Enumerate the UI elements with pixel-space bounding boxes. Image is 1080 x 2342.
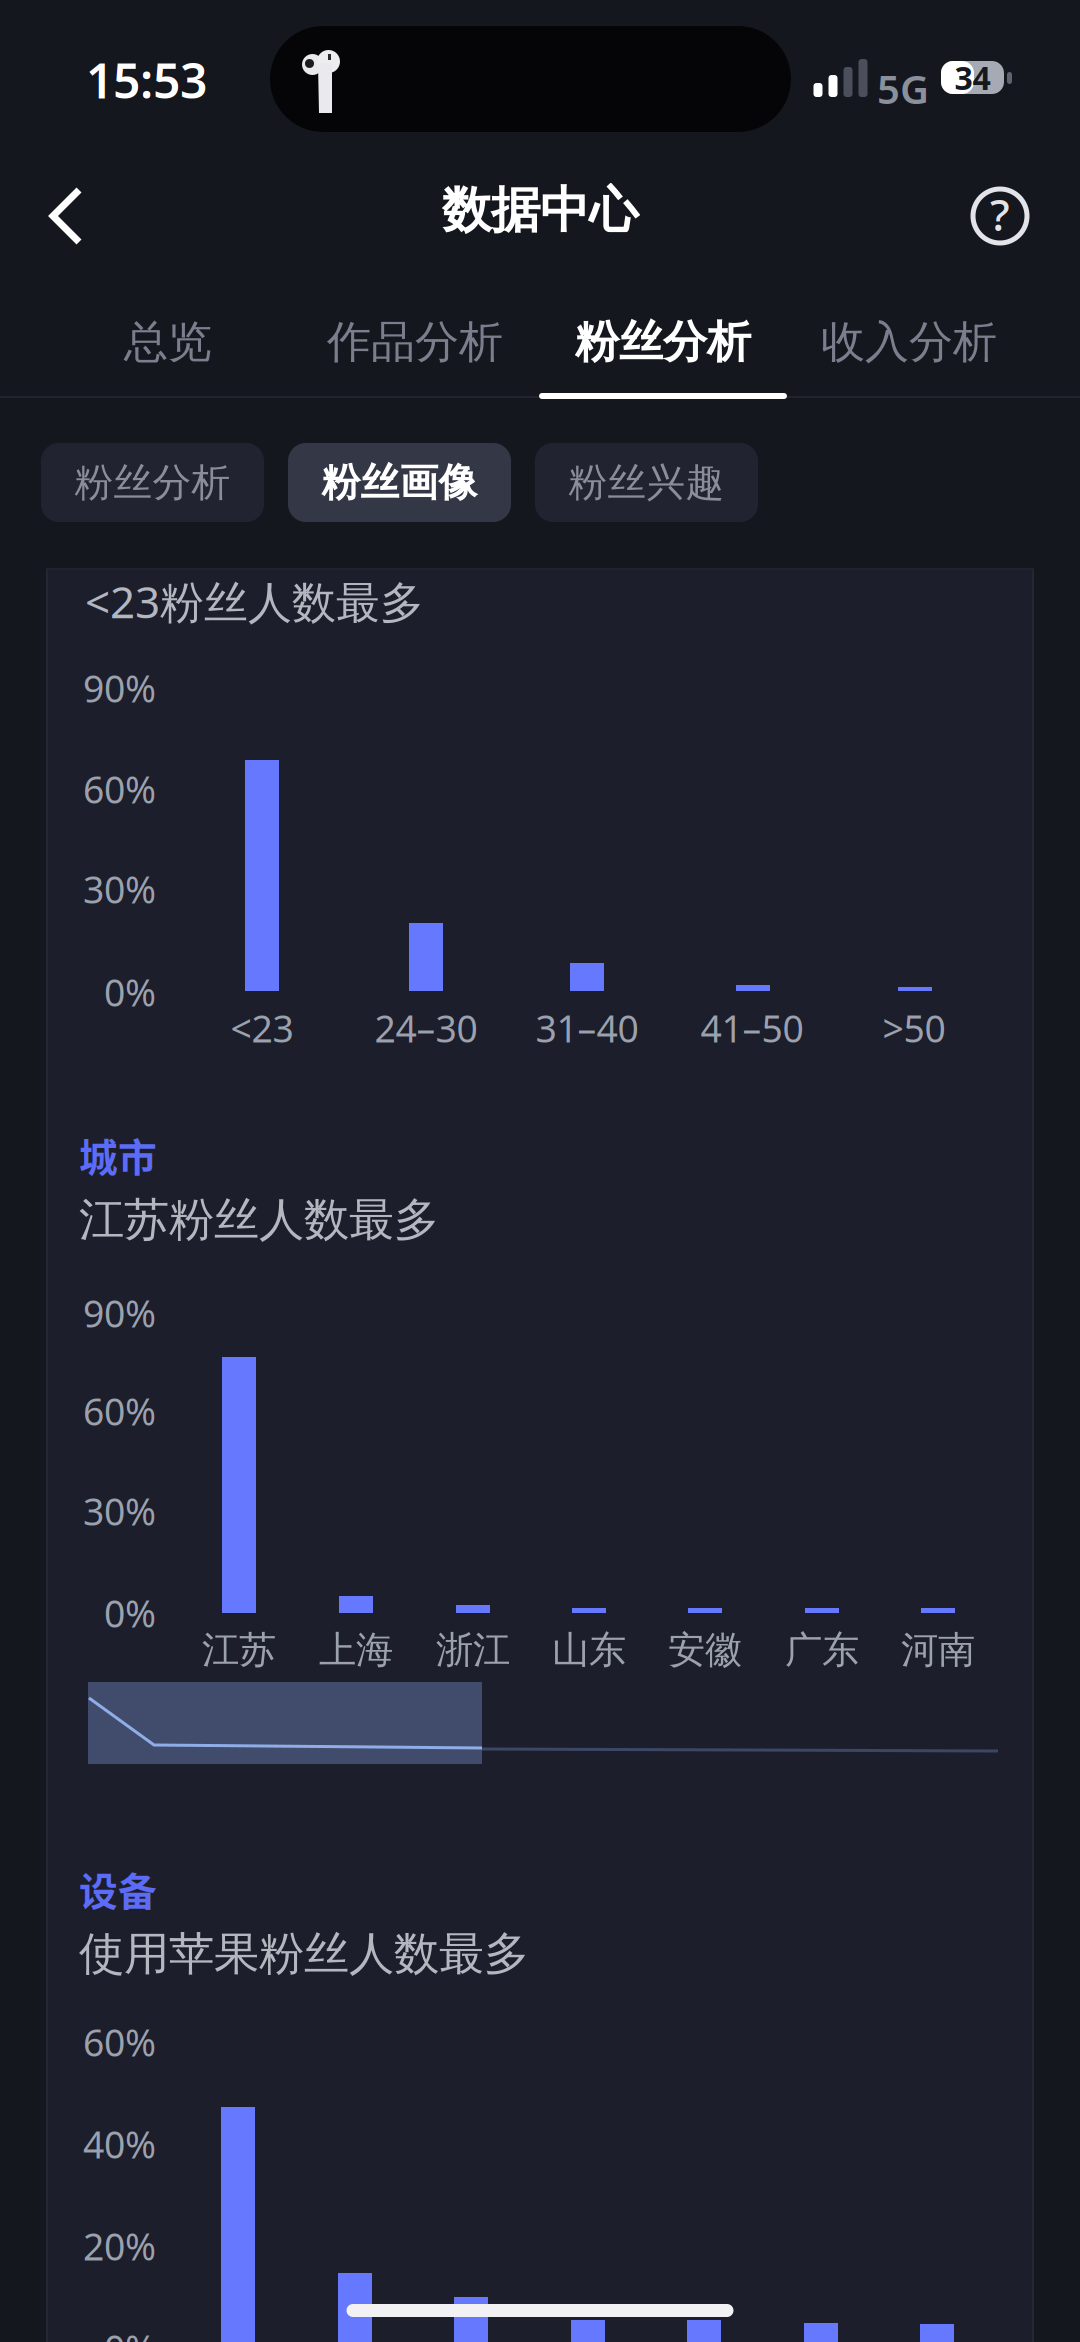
staticText: 设备: [79, 1861, 157, 1917]
staticText: 江苏: [202, 1627, 276, 1673]
staticText: 0%: [104, 967, 156, 1017]
staticText: 江苏粉丝人数最多: [79, 1192, 439, 1248]
staticText: 粉丝画像: [321, 459, 477, 506]
staticText: 广东: [785, 1627, 859, 1673]
staticText: ?: [990, 185, 1010, 243]
staticText: 粉丝分析: [575, 315, 751, 369]
button[interactable]: 总览: [44, 310, 292, 402]
staticText: <23: [230, 1003, 293, 1053]
button[interactable]: 粉丝兴趣: [535, 443, 758, 522]
staticText: 0%: [104, 1588, 156, 1638]
staticText: 90%: [83, 1288, 156, 1338]
staticText: <23粉丝人数最多: [85, 572, 424, 630]
staticText: 41–50: [700, 1003, 803, 1053]
button[interactable]: 粉丝画像: [288, 443, 511, 522]
staticText: 30%: [83, 864, 156, 914]
staticText: 90%: [83, 663, 156, 713]
staticText: 15:53: [86, 48, 207, 112]
staticText: 24–30: [374, 1003, 477, 1053]
staticText: 城市: [79, 1127, 157, 1183]
staticText: 河南: [901, 1627, 975, 1673]
button[interactable]: 帮助: [945, 163, 1055, 269]
staticText: 40%: [83, 2119, 156, 2169]
staticText: 5G: [877, 62, 929, 115]
button[interactable]: 图表滑块: [88, 1682, 998, 1764]
staticText: 收入分析: [821, 315, 997, 369]
button[interactable]: 收入分析: [785, 310, 1033, 402]
staticText: 31–40: [535, 1003, 638, 1053]
button[interactable]: 粉丝分析: [539, 310, 787, 402]
staticText: 粉丝分析: [74, 459, 230, 506]
button[interactable]: 作品分析: [291, 310, 539, 402]
staticText: >50: [882, 1003, 945, 1053]
staticText: 0%: [104, 2323, 156, 2342]
staticText: 作品分析: [327, 315, 503, 369]
staticText: 总览: [124, 315, 212, 369]
staticText: 上海: [319, 1627, 393, 1673]
button[interactable]: 粉丝分析: [41, 443, 264, 522]
staticText: 30%: [83, 1486, 156, 1536]
staticText: 粉丝兴趣: [568, 459, 724, 506]
staticText: 20%: [83, 2221, 156, 2271]
staticText: 60%: [83, 764, 156, 814]
staticText: 浙江: [436, 1627, 510, 1673]
staticText: 60%: [83, 2017, 156, 2067]
staticText: 数据中心: [442, 180, 638, 241]
button[interactable]: 返回: [11, 163, 121, 269]
staticText: 34: [954, 56, 990, 99]
staticText: 60%: [83, 1386, 156, 1436]
staticText: 使用苹果粉丝人数最多: [79, 1926, 529, 1982]
staticText: 安徽: [668, 1627, 742, 1673]
staticText: 山东: [552, 1627, 626, 1673]
